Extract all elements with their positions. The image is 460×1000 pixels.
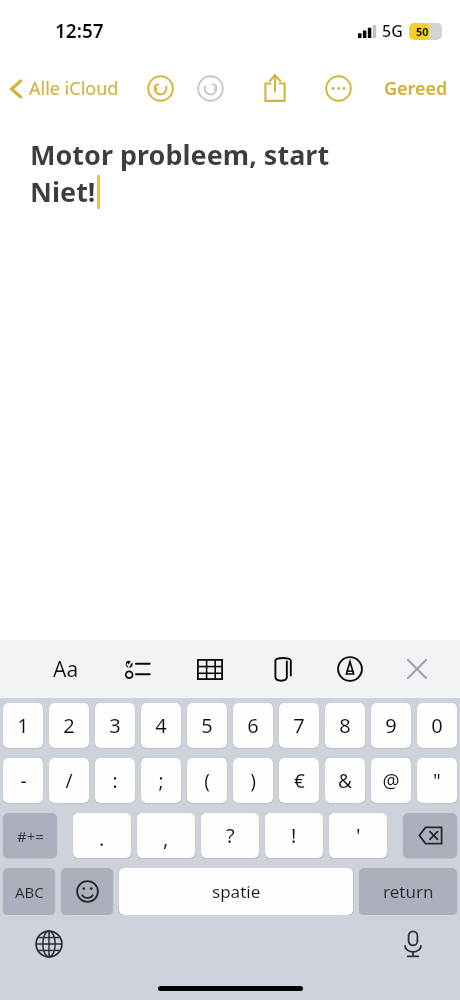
button[interactable]: Markup: [330, 640, 370, 698]
button[interactable]: Attach: [262, 640, 302, 698]
staticText: 5: [201, 712, 213, 739]
button[interactable]: ABC: [3, 868, 55, 915]
button[interactable]: Table: [190, 640, 230, 698]
button[interactable]: Backspace: [403, 813, 457, 858]
button[interactable]: 3: [95, 703, 135, 748]
staticText: !: [291, 822, 297, 849]
staticText: 0: [431, 712, 443, 739]
button[interactable]: Alle iCloud: [0, 70, 125, 107]
staticText: .: [99, 825, 105, 852]
button[interactable]: Close keyboard: [397, 640, 437, 698]
button[interactable]: (: [187, 758, 227, 803]
staticText: 3: [109, 712, 121, 739]
staticText: (: [204, 768, 210, 794]
button[interactable]: :: [95, 758, 135, 803]
button[interactable]: ?: [201, 813, 259, 858]
staticText: ): [250, 768, 256, 794]
button[interactable]: 1: [3, 703, 43, 748]
button[interactable]: return: [359, 868, 457, 915]
button[interactable]: ): [233, 758, 273, 803]
button[interactable]: Emoji: [61, 868, 113, 915]
staticText: Alle iCloud: [29, 76, 119, 101]
button[interactable]: spatie: [119, 868, 353, 915]
button[interactable]: @: [371, 758, 411, 803]
staticText: 6: [247, 712, 259, 739]
staticText: ,: [163, 825, 169, 852]
button[interactable]: Checklist: [118, 640, 158, 698]
button[interactable]: 6: [233, 703, 273, 748]
button[interactable]: ': [329, 813, 387, 858]
staticText: Gereed: [384, 76, 448, 101]
staticText: 2: [63, 712, 75, 739]
staticText: @: [382, 768, 400, 794]
button[interactable]: Share: [258, 71, 292, 105]
button[interactable]: Gereed: [372, 70, 460, 107]
staticText: 12:57: [55, 18, 104, 44]
button[interactable]: -: [3, 758, 43, 803]
staticText: :: [112, 768, 118, 794]
button[interactable]: &: [325, 758, 365, 803]
button[interactable]: ,: [137, 813, 195, 858]
button[interactable]: 2: [49, 703, 89, 748]
staticText: -: [20, 768, 27, 794]
button[interactable]: 9: [371, 703, 411, 748]
button[interactable]: Dictate: [392, 923, 434, 965]
staticText: 8: [339, 712, 351, 739]
button[interactable]: Redo: [193, 71, 227, 105]
staticText: €: [294, 768, 305, 794]
button[interactable]: ": [417, 758, 457, 803]
staticText: 9: [385, 712, 397, 739]
button[interactable]: /: [49, 758, 89, 803]
button[interactable]: 5: [187, 703, 227, 748]
staticText: ?: [226, 822, 235, 849]
button[interactable]: Text format: [46, 649, 86, 689]
staticText: 4: [155, 712, 167, 739]
staticText: ABC: [15, 882, 44, 902]
button[interactable]: 8: [325, 703, 365, 748]
button[interactable]: 7: [279, 703, 319, 748]
button[interactable]: Change keyboard language: [28, 923, 70, 965]
staticText: 50: [416, 24, 429, 39]
staticText: return: [383, 880, 434, 903]
button[interactable]: 0: [417, 703, 457, 748]
staticText: ": [433, 768, 441, 794]
button[interactable]: 4: [141, 703, 181, 748]
staticText: Niet!: [30, 173, 96, 210]
staticText: &: [338, 768, 352, 794]
staticText: 5G: [382, 20, 403, 42]
button[interactable]: !: [265, 813, 323, 858]
button[interactable]: Undo: [143, 71, 177, 105]
staticText: ;: [158, 768, 164, 794]
staticText: Motor probleem, start: [30, 136, 330, 173]
staticText: #+=: [17, 826, 44, 846]
staticText: 1: [17, 712, 29, 739]
button[interactable]: ;: [141, 758, 181, 803]
button[interactable]: #+=: [3, 813, 57, 858]
button[interactable]: .: [73, 813, 131, 858]
staticText: ': [356, 822, 361, 849]
staticText: spatie: [212, 880, 261, 903]
staticText: /: [65, 768, 73, 794]
button[interactable]: More options: [321, 71, 355, 105]
staticText: 7: [293, 712, 305, 739]
staticText: Aa: [53, 655, 79, 684]
button[interactable]: €: [279, 758, 319, 803]
